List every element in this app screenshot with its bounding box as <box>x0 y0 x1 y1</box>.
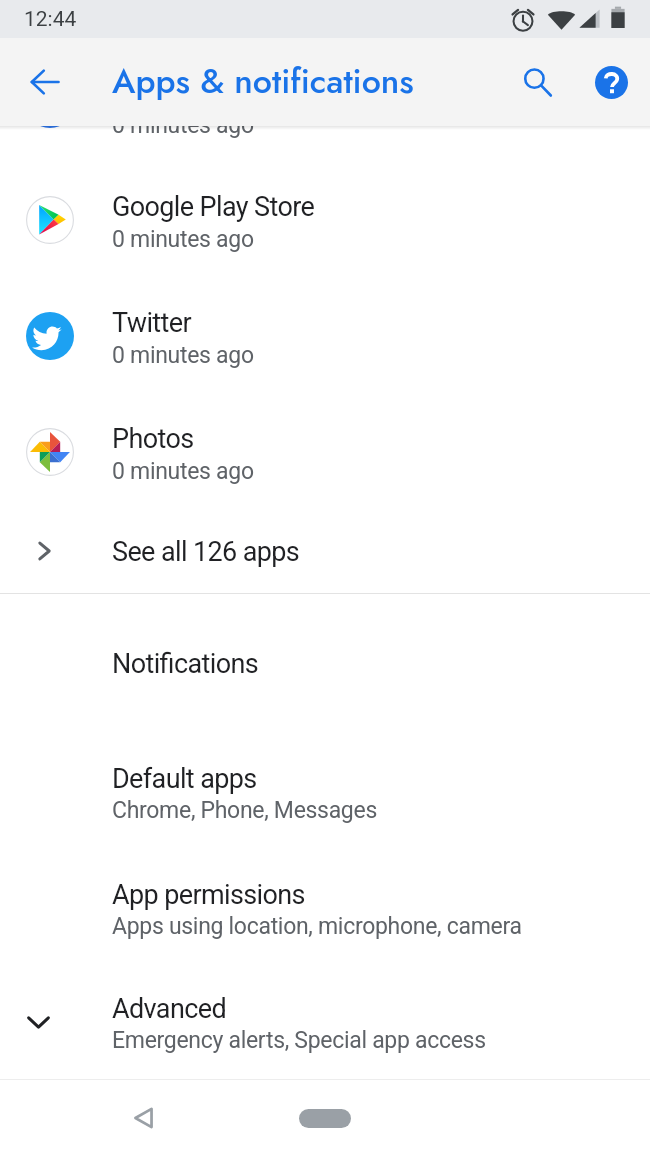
button[interactable]: Google Play Store <box>0 162 650 277</box>
staticText: Emergency alerts, Special app access <box>112 1027 486 1054</box>
staticText: 0 minutes ago <box>112 342 254 369</box>
staticText: Photos <box>112 423 194 455</box>
staticText: 0 minutes ago <box>112 458 254 485</box>
button[interactable]: Back <box>120 1094 168 1142</box>
staticText: Notifications <box>112 648 259 680</box>
button[interactable]: Home <box>285 1098 365 1138</box>
staticText: Apps using location, microphone, camera <box>112 913 522 940</box>
staticText: App permissions <box>112 879 305 911</box>
button[interactable]: App permissions <box>0 846 650 960</box>
button[interactable]: Twitter <box>0 278 650 393</box>
staticText: Chrome, Phone, Messages <box>112 797 377 824</box>
staticText: See all 126 apps <box>112 536 300 568</box>
staticText: 12:44 <box>24 7 77 32</box>
button[interactable]: Notifications <box>0 615 650 691</box>
button[interactable]: Help <box>580 51 642 113</box>
staticText: Twitter <box>112 307 192 339</box>
button[interactable]: Search <box>506 51 568 113</box>
staticText: Advanced <box>112 993 227 1025</box>
staticText: Apps & notifications <box>112 57 414 106</box>
staticText: 0 minutes ago <box>112 126 254 139</box>
staticText: 0 minutes ago <box>112 226 254 253</box>
button[interactable]: Advanced <box>0 960 650 1074</box>
button[interactable]: Navigate up <box>16 53 74 111</box>
staticText: Google Play Store <box>112 191 315 223</box>
button[interactable]: See all 126 apps <box>0 507 650 595</box>
button[interactable]: Photos <box>0 394 650 509</box>
button[interactable]: Default apps <box>0 730 650 844</box>
staticText: Default apps <box>112 763 257 795</box>
